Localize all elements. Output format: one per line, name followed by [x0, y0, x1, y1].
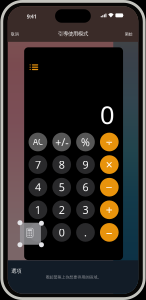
button[interactable]: 0 — [52, 223, 71, 242]
button[interactable]: × — [100, 155, 119, 174]
staticText: 0 — [59, 225, 65, 239]
staticText: 9:41 — [27, 13, 37, 20]
staticText: 3 — [82, 203, 88, 217]
button[interactable]: 開始 — [122, 29, 134, 39]
button[interactable]: +/- — [52, 133, 71, 151]
staticText: % — [81, 135, 90, 149]
staticText: 1 — [35, 203, 41, 217]
staticText: 2 — [59, 203, 65, 217]
button[interactable]: ÷ — [100, 133, 119, 151]
staticText: 選項 — [11, 268, 21, 274]
staticText: 9 — [82, 157, 88, 172]
button[interactable]: 5 — [52, 178, 71, 196]
staticText: 7 — [35, 157, 41, 172]
button[interactable]: 6 — [76, 178, 95, 196]
staticText: + — [106, 202, 113, 218]
button[interactable]: % — [76, 133, 95, 151]
staticText: 8 — [59, 157, 65, 172]
staticText: ÷ — [106, 134, 113, 150]
button[interactable]: 取消 — [9, 29, 21, 39]
staticText: +/- — [55, 135, 68, 149]
staticText: 5 — [59, 180, 65, 194]
button[interactable]: AC — [28, 133, 47, 151]
staticText: = — [106, 224, 113, 240]
staticText: × — [106, 157, 113, 172]
button[interactable]: 4 — [28, 178, 47, 196]
button[interactable]: − — [100, 178, 119, 196]
button[interactable]: 8 — [52, 155, 71, 174]
staticText: 4 — [35, 180, 41, 194]
button[interactable]: 3 — [76, 200, 95, 219]
staticText: 開始 — [124, 32, 132, 37]
button[interactable]: 選項 — [9, 266, 23, 276]
staticText: 6 — [82, 180, 88, 194]
staticText: 引導使用模式 — [58, 30, 88, 37]
button[interactable]: + — [100, 200, 119, 219]
staticText: − — [106, 179, 113, 195]
staticText: 0 — [100, 97, 114, 131]
staticText: 圈起螢幕上你想要停用的區域。 — [46, 275, 102, 280]
staticText: 取消 — [11, 32, 19, 37]
button[interactable]: 7 — [28, 155, 47, 174]
staticText: AC — [33, 137, 43, 147]
staticText: . — [84, 225, 87, 239]
button[interactable]: = — [100, 223, 119, 242]
button[interactable]: 2 — [52, 200, 71, 219]
button[interactable]: 1 — [28, 200, 47, 219]
button[interactable] — [28, 223, 47, 242]
button[interactable]: . — [76, 223, 95, 242]
button[interactable]: 9 — [76, 155, 95, 174]
